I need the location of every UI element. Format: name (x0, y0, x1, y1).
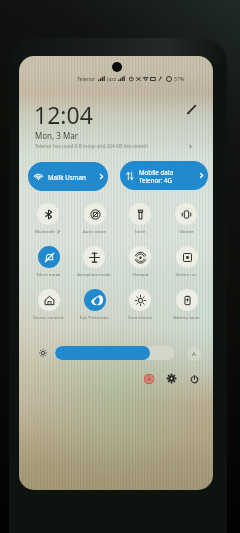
staticText: Device controls (33, 314, 64, 320)
button[interactable]: Auto rotate (71, 203, 117, 239)
staticText: Torch (134, 228, 146, 234)
button[interactable]: Vibrate (163, 203, 209, 239)
button[interactable]: Auto brightness (187, 347, 201, 361)
staticText: Hotspot (132, 271, 149, 277)
staticText: Auto rotate (83, 228, 106, 234)
button[interactable]: Bluetooth (25, 203, 71, 239)
button[interactable]: Settings (167, 374, 176, 383)
button[interactable]: Telenor has used 0 B today and 264 KB th… (35, 143, 200, 151)
staticText: A (192, 350, 196, 358)
staticText: Aeroplane mode (77, 271, 111, 277)
staticText: Battery saver (173, 314, 200, 320)
button[interactable] (55, 346, 174, 360)
staticText: Jazz (107, 75, 117, 82)
button[interactable]: Aeroplane mode (71, 246, 117, 282)
button[interactable]: Eye Protection (71, 289, 117, 325)
staticText: Vibrate (179, 228, 194, 234)
staticText: Malik Usman (48, 173, 86, 181)
staticText: 57% (174, 75, 185, 82)
button[interactable]: Power (190, 375, 199, 384)
staticText: Bluetooth (35, 228, 55, 234)
button[interactable]: Battery saver (163, 289, 209, 325)
button[interactable]: Edit (185, 103, 198, 116)
staticText: Mon, 3 Mar (35, 130, 78, 141)
button[interactable]: Dark theme (117, 289, 163, 325)
button[interactable]: Mobile data (120, 161, 208, 190)
button[interactable]: Edit tiles (144, 374, 154, 384)
staticText: Dark theme (128, 314, 152, 320)
button[interactable]: Silent mode (25, 246, 71, 282)
button[interactable]: Malik Usman (28, 162, 108, 191)
staticText: Eye Protection (80, 314, 109, 320)
button[interactable]: Hotspot (117, 246, 163, 282)
staticText: Telenor has used 0 B today and 264 KB th… (35, 143, 148, 150)
staticText: Silent mode (36, 271, 61, 277)
button[interactable]: Screen rec. (163, 246, 209, 282)
button[interactable]: Device controls (25, 289, 71, 325)
staticText: 12:04 (34, 99, 93, 130)
staticText: Mobile data (139, 168, 174, 176)
button[interactable]: Torch (117, 203, 163, 239)
staticText: Screen rec. (175, 271, 198, 277)
staticText: Telenor: 4G (139, 176, 173, 184)
staticText: Telenor (77, 75, 96, 82)
